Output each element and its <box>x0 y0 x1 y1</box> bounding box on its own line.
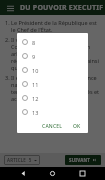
staticText: 11 <box>32 81 39 88</box>
staticText: Le Président de la République est le Che… <box>11 19 101 33</box>
button[interactable]: 11 <box>17 77 88 91</box>
staticText: SUIVANT <box>69 157 91 163</box>
button[interactable]: Open navigation menu <box>4 2 16 14</box>
button[interactable]: 9 <box>17 49 88 63</box>
staticText: CANCEL <box>42 123 63 130</box>
button[interactable]: 13 <box>17 105 88 119</box>
button[interactable]: Recent apps <box>76 167 89 180</box>
button[interactable]: Home <box>46 167 59 180</box>
staticText: 8 <box>32 39 36 46</box>
button[interactable]: 12 <box>17 91 88 105</box>
staticText: 13 <box>32 109 39 116</box>
button[interactable]: OK <box>70 121 84 132</box>
staticText: Il veille au respect de la Constitution … <box>11 36 101 71</box>
staticText: 3. <box>5 74 11 81</box>
button[interactable]: Back <box>17 167 30 180</box>
button[interactable]: 8 <box>17 35 88 49</box>
staticText: 10 <box>32 67 39 74</box>
staticText: ARTICLE 5 <box>7 157 32 163</box>
staticText: OK <box>73 123 81 130</box>
staticText: DU POUVOIR EXECUTIF <box>20 3 104 13</box>
staticText: Il est le garant de l'indépendance natio… <box>11 74 101 102</box>
staticText: 2. <box>5 36 11 43</box>
staticText: 1. <box>5 19 11 26</box>
staticText: 9 <box>32 53 36 60</box>
button[interactable]: ARTICLE 5 <box>4 155 40 165</box>
button[interactable]: SUIVANT <box>65 155 101 165</box>
button[interactable]: CANCEL <box>39 121 66 132</box>
button[interactable]: 10 <box>17 63 88 77</box>
staticText: 12 <box>32 95 39 102</box>
